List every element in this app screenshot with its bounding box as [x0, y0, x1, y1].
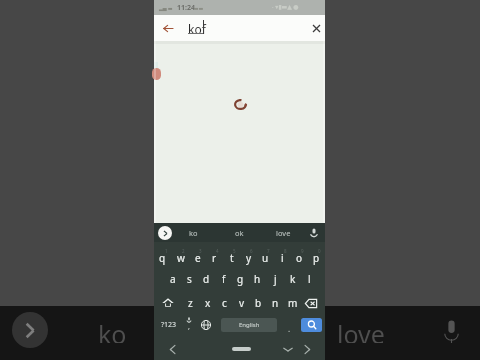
- staticText: v: [239, 296, 245, 310]
- staticText: w: [177, 251, 185, 265]
- button[interactable]: Voice input: [441, 319, 462, 344]
- button[interactable]: b: [250, 293, 267, 313]
- staticText: 5: [233, 248, 236, 254]
- staticText: ▬▬: [194, 5, 204, 11]
- staticText: n: [272, 296, 279, 310]
- staticText: 4: [216, 248, 219, 254]
- staticText: · ▾▮▬▲ ●: [272, 3, 299, 11]
- staticText: g: [237, 272, 244, 286]
- staticText: f: [222, 272, 226, 286]
- button[interactable]: x: [199, 293, 216, 313]
- button[interactable]: n: [267, 293, 284, 313]
- button[interactable]: w: [172, 248, 189, 268]
- button[interactable]: Shift: [157, 293, 179, 313]
- staticText: ko: [98, 317, 127, 343]
- staticText: ,: [188, 322, 190, 332]
- button[interactable]: love: [337, 317, 401, 343]
- staticText: d: [203, 272, 210, 286]
- staticText: English: [239, 321, 260, 329]
- button[interactable]: More suggestions: [12, 312, 48, 348]
- button[interactable]: q: [154, 248, 171, 268]
- button[interactable]: y: [240, 248, 257, 268]
- staticText: o: [296, 251, 303, 265]
- staticText: b: [255, 296, 262, 310]
- button[interactable]: f: [215, 269, 232, 289]
- staticText: j: [274, 272, 277, 286]
- staticText: s: [187, 272, 192, 286]
- staticText: t: [230, 251, 234, 265]
- staticText: ok: [235, 228, 244, 238]
- staticText: r: [212, 251, 217, 265]
- button[interactable]: Back: [157, 15, 179, 41]
- button[interactable]: s: [181, 269, 198, 289]
- staticText: h: [254, 272, 261, 286]
- button[interactable]: Switch language: [199, 314, 213, 336]
- button[interactable]: love: [263, 223, 303, 242]
- button[interactable]: o: [291, 248, 308, 268]
- button[interactable]: m: [284, 293, 301, 313]
- staticText: 6: [250, 248, 253, 254]
- button[interactable]: ok: [219, 223, 259, 242]
- staticText: z: [188, 296, 193, 310]
- button[interactable]: Recent apps: [297, 338, 318, 360]
- staticText: 0: [318, 248, 321, 254]
- staticText: x: [205, 296, 211, 310]
- button[interactable]: ?123: [156, 314, 181, 336]
- button[interactable]: Search: [301, 318, 322, 332]
- button[interactable]: h: [249, 269, 266, 289]
- button[interactable]: a: [164, 269, 181, 289]
- button[interactable]: ko: [173, 223, 213, 242]
- staticText: q: [159, 251, 166, 265]
- staticText: c: [222, 296, 227, 310]
- staticText: 1: [165, 248, 168, 254]
- button[interactable]: Voice input: [305, 223, 322, 242]
- staticText: p: [313, 251, 320, 265]
- staticText: u: [262, 251, 269, 265]
- staticText: kof: [188, 21, 206, 37]
- button[interactable]: d: [198, 269, 215, 289]
- button[interactable]: v: [233, 293, 250, 313]
- staticText: i: [281, 251, 284, 265]
- button[interactable]: c: [216, 293, 233, 313]
- staticText: 7: [267, 248, 270, 254]
- staticText: .: [288, 323, 291, 334]
- button[interactable]: r: [206, 248, 223, 268]
- button[interactable]: Backspace: [300, 293, 322, 313]
- button[interactable]: g: [232, 269, 249, 289]
- staticText: l: [308, 272, 311, 286]
- staticText: love: [337, 317, 385, 343]
- button[interactable]: j: [267, 269, 284, 289]
- staticText: k: [290, 272, 296, 286]
- staticText: love: [276, 228, 291, 238]
- button[interactable]: e: [189, 248, 206, 268]
- staticText: ?123: [161, 320, 177, 330]
- staticText: 9: [301, 248, 304, 254]
- button[interactable]: p: [308, 248, 325, 268]
- button[interactable]: i: [274, 248, 291, 268]
- button[interactable]: ko: [98, 317, 132, 343]
- button[interactable]: Home: [226, 338, 257, 360]
- staticText: e: [195, 251, 201, 265]
- staticText: 3: [199, 248, 202, 254]
- button[interactable]: t: [223, 248, 240, 268]
- staticText: 2: [182, 248, 185, 254]
- staticText: ko: [189, 228, 198, 238]
- button[interactable]: Hide keyboard: [277, 338, 298, 360]
- button[interactable]: More suggestions: [158, 226, 172, 240]
- button[interactable]: English: [221, 318, 277, 332]
- button[interactable]: Comma: [182, 314, 196, 336]
- staticText: a: [170, 272, 176, 286]
- button[interactable]: z: [182, 293, 199, 313]
- staticText: m: [288, 296, 298, 310]
- button[interactable]: l: [301, 269, 318, 289]
- button[interactable]: Period: [283, 314, 296, 336]
- button[interactable]: Back: [162, 338, 183, 360]
- staticText: 8: [284, 248, 287, 254]
- staticText: y: [246, 251, 252, 265]
- staticText: ▂▄ ▬: [159, 5, 173, 12]
- button[interactable]: Clear search: [306, 15, 326, 41]
- staticText: 11:24: [177, 3, 195, 13]
- button[interactable]: u: [257, 248, 274, 268]
- button[interactable]: k: [284, 269, 301, 289]
